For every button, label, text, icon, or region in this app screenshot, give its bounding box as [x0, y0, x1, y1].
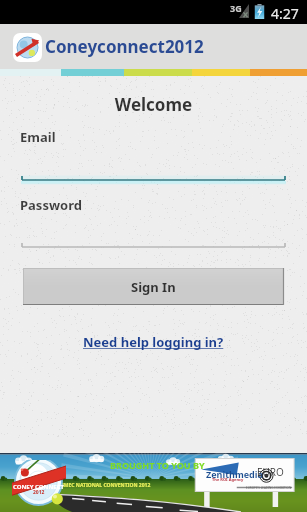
staticText: The ROI Agency	[212, 477, 244, 482]
staticText: EUROPE'S LEADING EXHIBITION	[246, 486, 292, 490]
staticText: Zenithmedia	[206, 468, 263, 480]
staticText: 4:27	[271, 4, 299, 23]
other: App logo	[13, 33, 42, 62]
button[interactable]: Advertisement	[0, 453, 307, 512]
staticText: Sign In	[131, 278, 176, 296]
staticText: CONEY CONNECT	[13, 483, 64, 491]
staticText: Password	[20, 196, 82, 214]
button[interactable]: Sign In	[23, 268, 284, 305]
staticText: Welcome	[0, 93, 307, 116]
staticText: 2012	[33, 489, 45, 496]
staticText: 3G	[230, 2, 242, 14]
staticText: EMEC NATIONAL CONVENTION 2012	[61, 482, 151, 489]
staticText: BROUGHT TO YOU BY	[110, 459, 205, 471]
staticText: Coneyconnect2012	[45, 35, 204, 58]
staticText: EURO	[257, 465, 284, 479]
staticText: Email	[20, 128, 56, 146]
button[interactable]: Need help logging in?	[83, 333, 224, 351]
